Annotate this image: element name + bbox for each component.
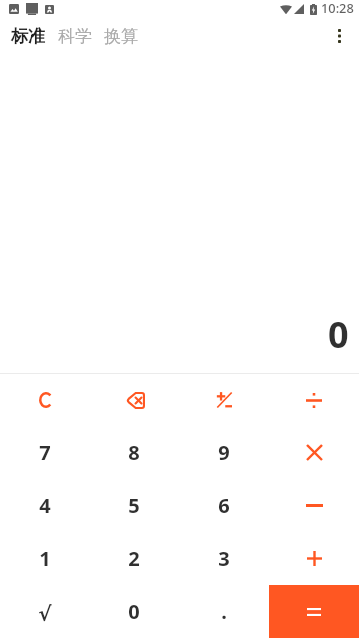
button[interactable]: 标准 xyxy=(11,26,45,47)
button[interactable]: Subtract xyxy=(269,479,359,532)
staticText: 2 xyxy=(128,545,140,572)
button[interactable]: . xyxy=(179,585,269,638)
staticText: 换算 xyxy=(104,26,138,47)
button[interactable]: Add xyxy=(269,532,359,585)
staticText: 10:28 xyxy=(321,0,354,16)
staticText: 3 xyxy=(218,545,230,572)
staticText: 1 xyxy=(39,545,51,572)
staticText: 6 xyxy=(218,492,230,519)
staticText: 5 xyxy=(128,492,140,519)
button[interactable]: Equals xyxy=(269,585,359,638)
button[interactable]: 3 xyxy=(179,532,269,585)
staticText: . xyxy=(221,598,227,625)
button[interactable]: Plus minus sign xyxy=(179,374,269,426)
button[interactable]: Multiply xyxy=(269,426,359,479)
button[interactable]: 换算 xyxy=(104,26,138,47)
button[interactable]: More options xyxy=(319,19,359,53)
button[interactable]: 9 xyxy=(179,426,269,479)
staticText: 7 xyxy=(39,439,51,466)
button[interactable]: √ xyxy=(0,585,89,638)
button[interactable]: 8 xyxy=(89,426,179,479)
button[interactable]: 4 xyxy=(0,479,89,532)
staticText: 8 xyxy=(128,439,140,466)
staticText: 标准 xyxy=(11,26,45,47)
button[interactable]: 1 xyxy=(0,532,89,585)
button[interactable]: 7 xyxy=(0,426,89,479)
staticText: 4 xyxy=(39,492,51,519)
button[interactable]: Backspace xyxy=(89,374,179,426)
button[interactable]: 6 xyxy=(179,479,269,532)
staticText: √ xyxy=(38,602,52,625)
staticText: 9 xyxy=(218,439,230,466)
button[interactable]: Divide xyxy=(269,374,359,426)
staticText: 0 xyxy=(328,310,349,359)
button[interactable]: 5 xyxy=(89,479,179,532)
button[interactable]: 2 xyxy=(89,532,179,585)
button[interactable]: 0 xyxy=(89,585,179,638)
button[interactable]: 科学 xyxy=(58,26,92,47)
button[interactable]: Clear xyxy=(0,374,89,426)
staticText: 0 xyxy=(128,598,140,625)
staticText: 科学 xyxy=(58,26,92,47)
